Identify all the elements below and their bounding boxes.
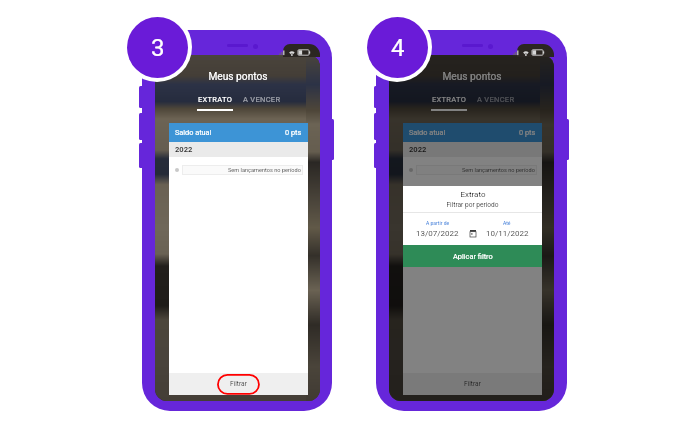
staticText: 0 pts xyxy=(519,128,536,137)
staticText: 3 xyxy=(151,34,165,62)
button[interactable]: Aplicar filtro xyxy=(403,245,542,267)
staticText: 13/07/2022 xyxy=(416,229,459,238)
staticText: A VENCER xyxy=(243,95,281,104)
other: Choose date xyxy=(470,230,476,237)
button[interactable]: Filtrar xyxy=(169,373,308,395)
staticText: EXTRATO xyxy=(432,95,467,104)
staticText: Meus pontos xyxy=(208,71,268,83)
staticText: EXTRATO xyxy=(198,95,233,104)
staticText: Filtrar xyxy=(230,380,247,388)
staticText: Sem lançamentos no período xyxy=(462,167,535,174)
button[interactable]: EXTRATO xyxy=(194,92,236,107)
button[interactable]: Sem lançamentos no período xyxy=(175,165,303,175)
staticText: A VENCER xyxy=(477,95,515,104)
staticText: 10/11/2022 xyxy=(486,229,529,238)
button[interactable]: EXTRATO xyxy=(428,92,470,107)
staticText: Saldo atual xyxy=(409,128,446,137)
staticText: Aplicar filtro xyxy=(453,252,493,261)
staticText: A partir de xyxy=(426,220,450,226)
staticText: Meus pontos xyxy=(442,71,502,83)
staticText: Até xyxy=(503,220,511,226)
staticText: Filtrar por periodo xyxy=(446,201,499,209)
staticText: 2022 xyxy=(409,145,427,154)
button[interactable]: Filtrar xyxy=(403,373,542,395)
staticText: 4 xyxy=(391,34,405,62)
staticText: 0 pts xyxy=(285,128,302,137)
staticText: Saldo atual xyxy=(175,128,212,137)
button[interactable]: A VENCER xyxy=(474,92,518,107)
staticText: Filtrar xyxy=(464,380,481,388)
button[interactable]: Sem lançamentos no período xyxy=(409,165,537,175)
button[interactable]: A VENCER xyxy=(240,92,284,107)
staticText: 2022 xyxy=(175,145,193,154)
staticText: Extrato xyxy=(460,190,486,199)
staticText: Sem lançamentos no período xyxy=(228,167,301,174)
